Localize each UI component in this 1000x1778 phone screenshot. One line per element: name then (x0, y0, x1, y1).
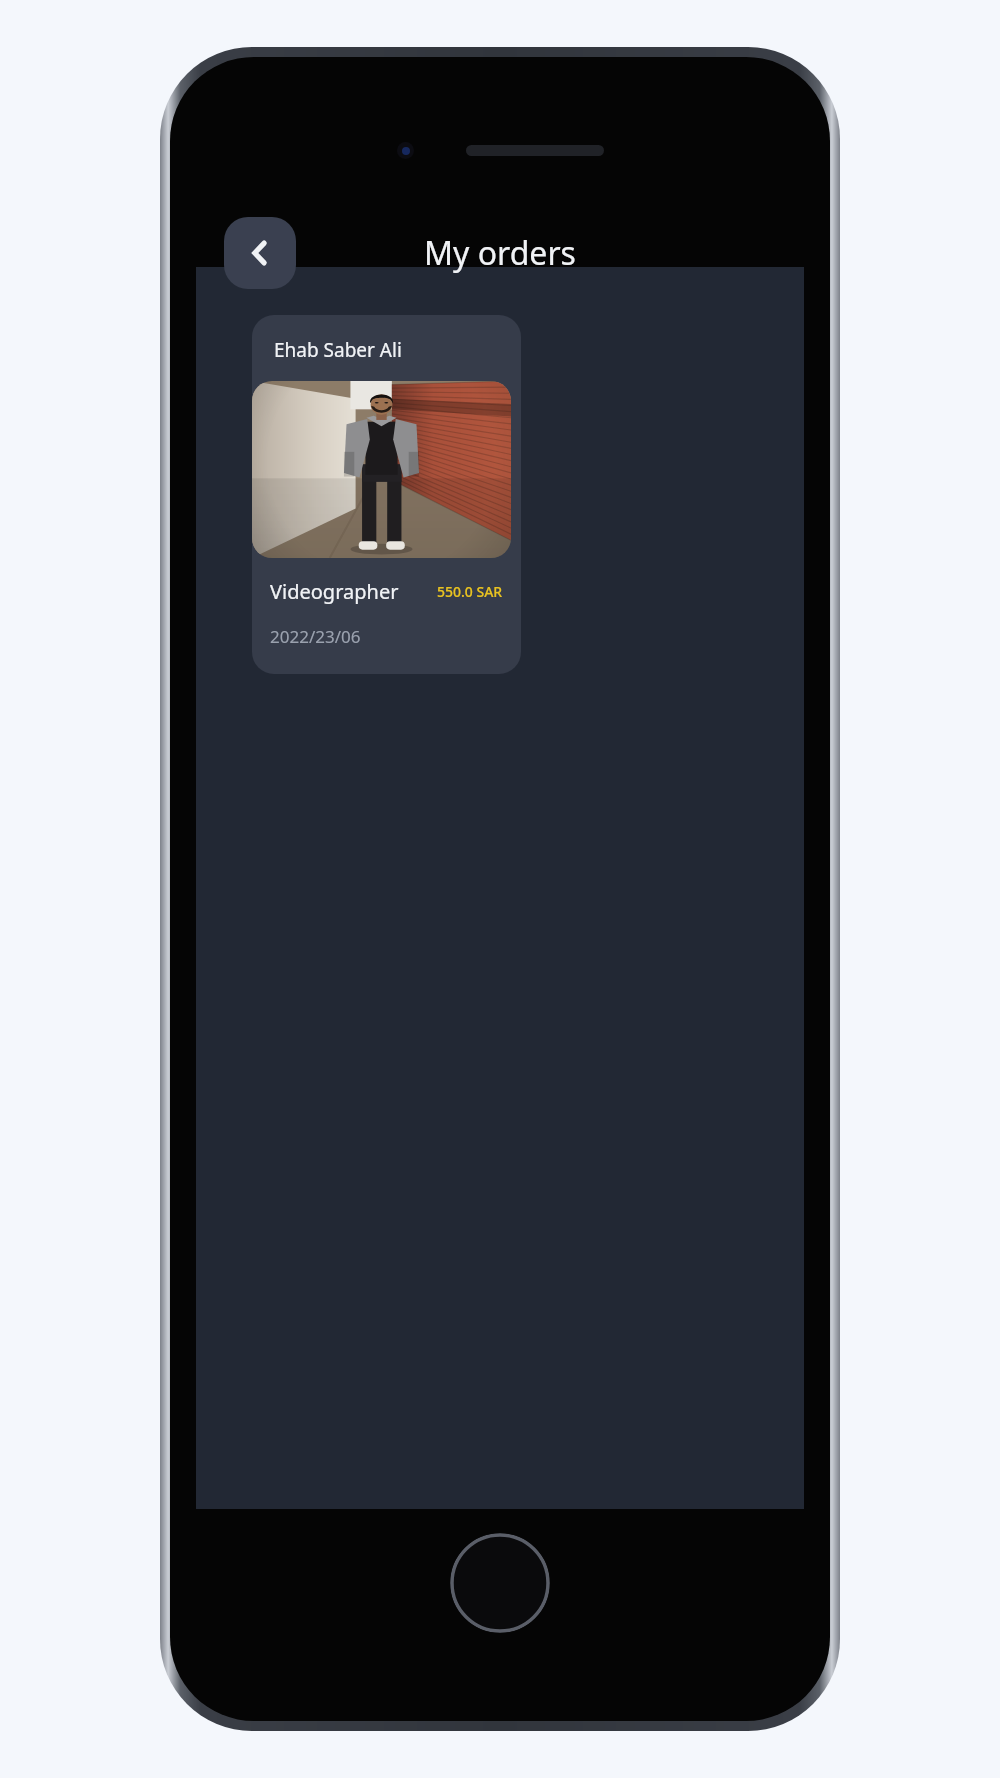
staticText: Videographer (270, 578, 399, 605)
button[interactable]: Back (224, 217, 296, 289)
staticText: 550.0 SAR (437, 582, 503, 601)
staticText: 2022/23/06 (270, 625, 361, 648)
other: Home (450, 1533, 550, 1633)
button[interactable]: Ehab Saber Ali (252, 315, 521, 674)
staticText: Ehab Saber Ali (274, 337, 402, 363)
staticText: My orders (424, 231, 576, 275)
